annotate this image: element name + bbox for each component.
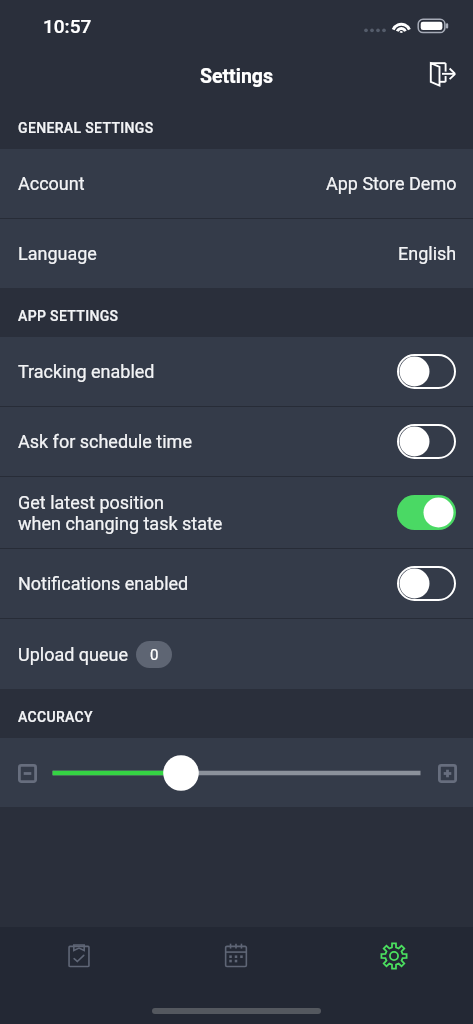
staticText: GENERAL SETTINGS <box>18 120 154 136</box>
button[interactable]: Ask for schedule time <box>0 407 473 476</box>
button[interactable]: Switch on <box>397 495 456 530</box>
button[interactable]: Switch off <box>397 354 456 389</box>
button[interactable]: Account <box>0 149 473 218</box>
button[interactable]: Decrease accuracy <box>9 755 45 791</box>
button[interactable]: Log out <box>421 52 465 96</box>
staticText: Tracking enabled <box>18 361 155 382</box>
staticText: 10:57 <box>43 15 92 37</box>
button[interactable]: Accuracy slider <box>0 753 473 793</box>
staticText: Account <box>18 173 85 194</box>
staticText: Upload queue <box>18 644 128 665</box>
button[interactable]: Get latest position <box>0 477 473 548</box>
staticText: Language <box>18 243 97 264</box>
button[interactable]: Tasks <box>0 927 157 985</box>
button[interactable]: Switch off <box>397 566 456 601</box>
button[interactable]: Switch off <box>397 424 456 459</box>
button[interactable]: Settings <box>315 927 473 985</box>
staticText: 0 <box>150 646 159 664</box>
button[interactable]: Notifications enabled <box>0 549 473 618</box>
staticText: when changing task state <box>18 513 223 534</box>
staticText: Get latest position <box>18 492 164 513</box>
button[interactable]: Tracking enabled <box>0 337 473 406</box>
staticText: Ask for schedule time <box>18 431 192 452</box>
button[interactable]: Upload queue <box>0 619 473 689</box>
staticText: APP SETTINGS <box>18 308 119 324</box>
staticText: App Store Demo <box>326 173 457 194</box>
staticText: English <box>398 243 457 264</box>
staticText: Settings <box>200 65 273 88</box>
button[interactable]: Increase accuracy <box>429 755 465 791</box>
staticText: ACCURACY <box>18 709 93 725</box>
staticText: Notifications enabled <box>18 573 189 594</box>
button[interactable]: Calendar <box>157 927 315 985</box>
button[interactable]: Language <box>0 219 473 288</box>
